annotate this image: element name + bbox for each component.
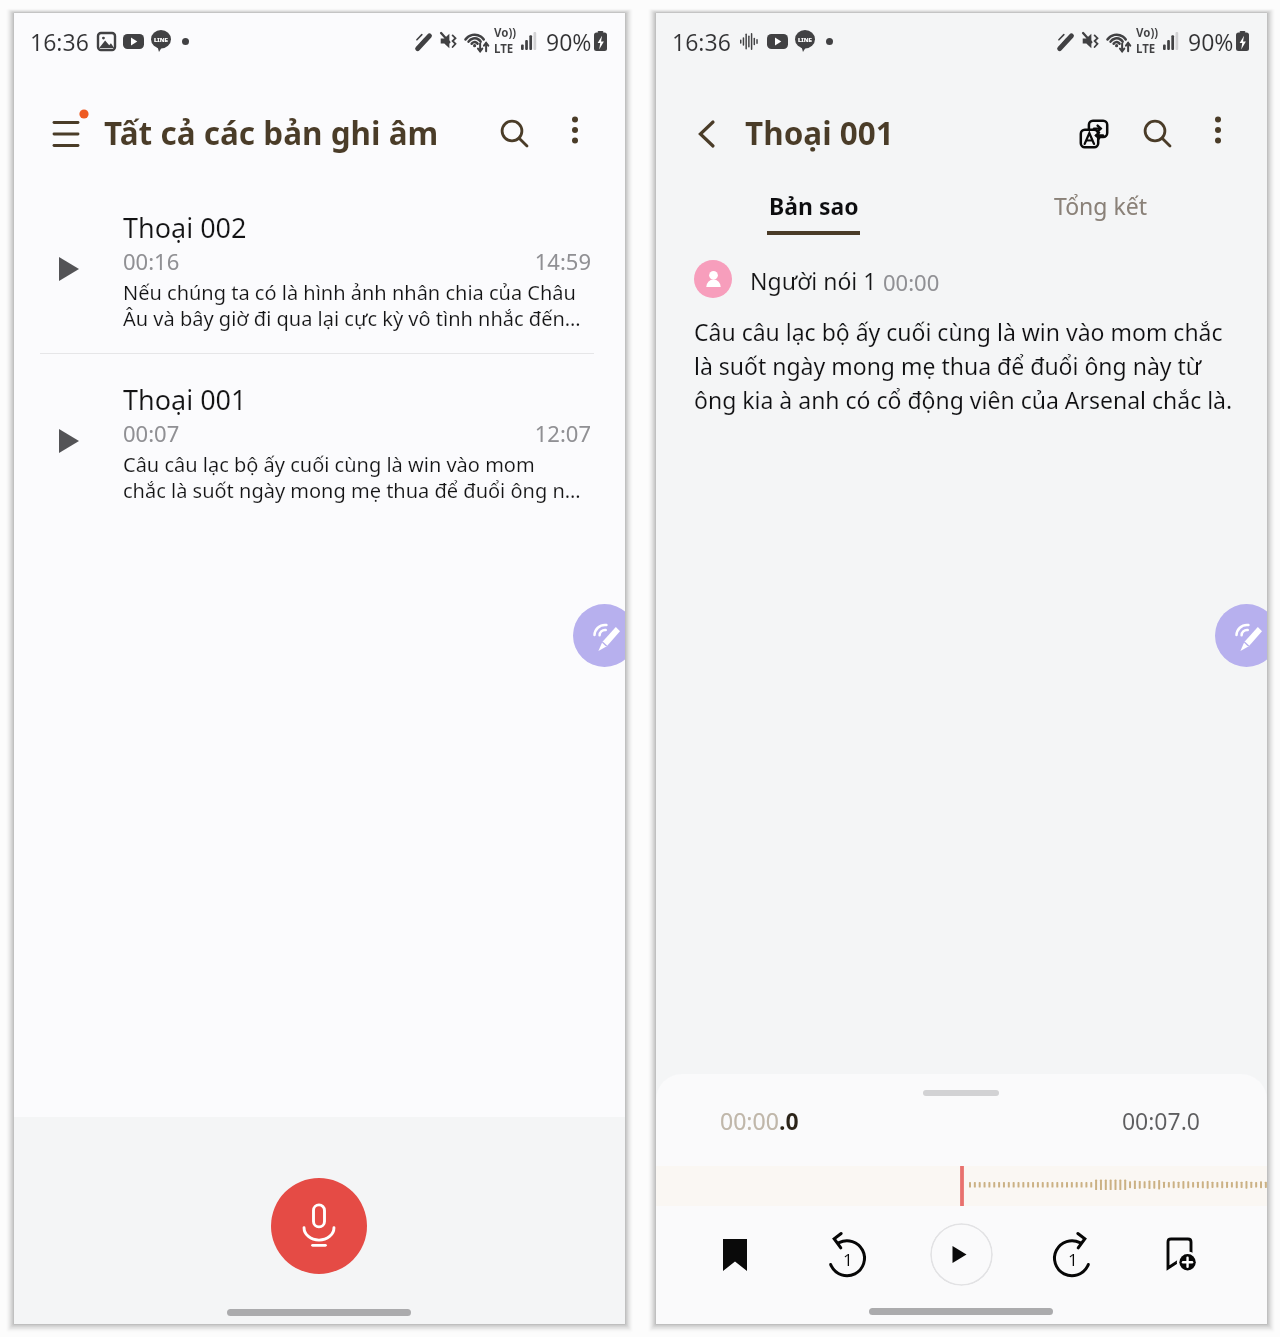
button[interactable]: AI summary [573,604,625,667]
button[interactable]: Back [683,110,731,158]
staticText: 90% [1188,26,1234,57]
staticText: 00:16 [123,246,180,276]
staticText: Nếu chúng ta có là hình ảnh nhân chia củ… [123,279,581,332]
staticText: Người nói 1 [750,265,877,296]
staticText: .0 [779,1105,799,1136]
staticText: Vo)) [1136,25,1159,41]
staticText: 00:07.0 [1036,1105,1200,1136]
staticText: 1 [1068,1248,1078,1271]
staticText: LINE [798,36,812,44]
button[interactable]: Menu [50,105,98,153]
staticText: Thoại 001 [745,111,894,154]
button[interactable]: Play [930,1223,993,1286]
staticText: 16:36 [672,26,731,57]
button[interactable]: Play [45,417,93,465]
button[interactable]: Record [271,1178,367,1274]
button[interactable]: Bản sao [712,190,914,250]
staticText: Câu câu lạc bộ ấy cuối cùng là win vào m… [694,316,1234,416]
button[interactable]: Forward 1 second [1046,1229,1098,1281]
staticText: Thoại 001 [123,381,247,418]
staticText: LINE [154,36,168,44]
staticText: LTE [494,41,514,57]
button[interactable]: Tổng kết [999,190,1201,250]
staticText: 00:00 [883,267,940,297]
staticText: 1 [843,1248,853,1271]
button[interactable]: Bookmark [709,1229,761,1281]
button[interactable]: More options [1198,110,1238,150]
staticText: 16:36 [30,26,89,57]
staticText: Bản sao [769,190,859,221]
button[interactable]: Search [1134,110,1182,158]
button[interactable]: Search [491,110,539,158]
staticText: 14:59 [123,246,591,276]
button[interactable]: Play [45,245,93,293]
staticText: LTE [1136,41,1156,57]
staticText: Câu câu lạc bộ ấy cuối cùng là win vào m… [123,451,581,504]
staticText: Vo)) [494,25,517,41]
button[interactable]: More options [555,110,595,150]
staticText: 00:00 [720,1105,779,1136]
button[interactable]: Translate [1070,110,1118,158]
staticText: 12:07 [123,418,591,448]
staticText: Thoại 002 [123,209,247,246]
staticText: Tổng kết [1054,190,1147,221]
button[interactable]: Add bookmark [1159,1229,1211,1281]
staticText: 00:07 [123,418,180,448]
button[interactable]: Rewind 1 second [821,1229,873,1281]
staticText: Tất cả các bản ghi âm [104,111,439,154]
button[interactable]: AI summary [1215,604,1267,667]
staticText: 90% [546,26,592,57]
